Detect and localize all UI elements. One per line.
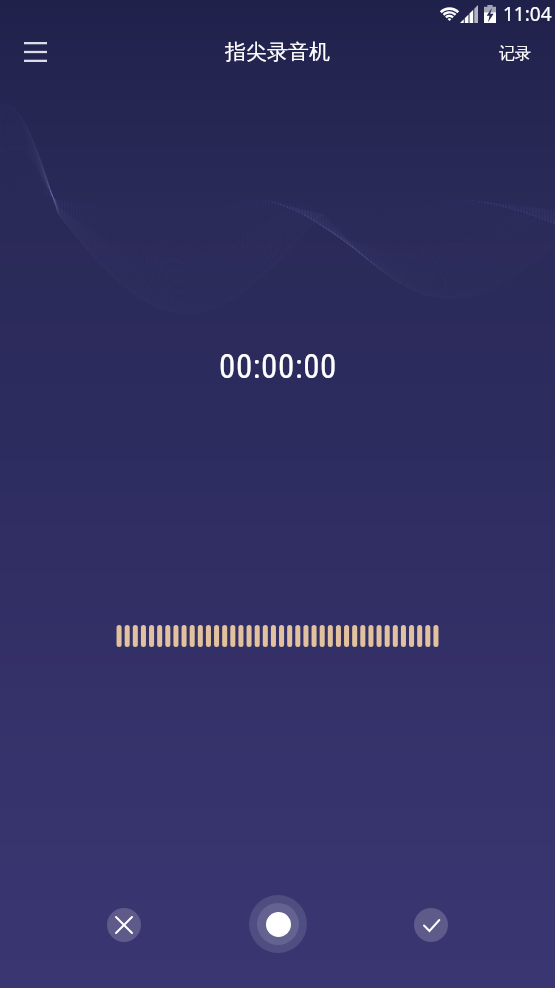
button[interactable]: Record <box>249 895 307 953</box>
staticText: 11:04 <box>503 1 552 27</box>
staticText: 00:00:00 <box>219 347 337 386</box>
staticText: 指尖录音机 <box>225 39 330 65</box>
staticText: 记录 <box>499 44 531 64</box>
button[interactable]: Cancel <box>107 908 141 942</box>
button[interactable]: Done <box>414 908 448 942</box>
button[interactable]: Menu <box>11 28 59 76</box>
button[interactable]: 记录 <box>483 36 555 72</box>
